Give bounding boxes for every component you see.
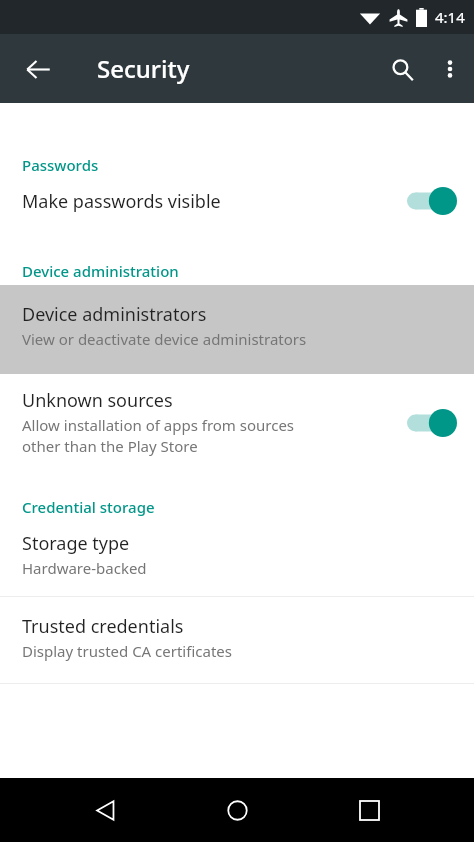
staticText: Passwords: [22, 155, 99, 175]
button[interactable]: Make passwords visible: [0, 181, 474, 221]
button[interactable]: Back: [81, 786, 129, 834]
button[interactable]: Recent apps: [345, 786, 393, 834]
button[interactable]: Trusted credentials: [0, 597, 474, 683]
staticText: Device administration: [22, 261, 179, 281]
staticText: Display trusted CA certificates: [22, 641, 232, 661]
button[interactable]: Storage type: [0, 525, 474, 596]
staticText: Credential storage: [22, 497, 155, 517]
other: Toggle: [406, 185, 458, 217]
staticText: Unknown sources: [22, 388, 173, 413]
staticText: View or deactivate device administrators: [22, 329, 307, 349]
button[interactable]: Home: [213, 786, 261, 834]
button[interactable]: Device administrators: [0, 285, 474, 374]
staticText: Hardware-backed: [22, 558, 147, 578]
button[interactable]: Back: [14, 45, 62, 93]
staticText: Allow installation of apps from sources …: [22, 415, 295, 457]
button[interactable]: Unknown sources: [0, 374, 474, 465]
button[interactable]: More options: [426, 45, 474, 93]
staticText: Trusted credentials: [22, 614, 184, 639]
other: Toggle: [406, 407, 458, 439]
staticText: Make passwords visible: [22, 189, 221, 214]
staticText: 4:14: [435, 7, 465, 27]
staticText: Storage type: [22, 531, 130, 556]
staticText: Security: [97, 52, 190, 85]
staticText: Device administrators: [22, 302, 207, 327]
button[interactable]: Search: [378, 45, 426, 93]
